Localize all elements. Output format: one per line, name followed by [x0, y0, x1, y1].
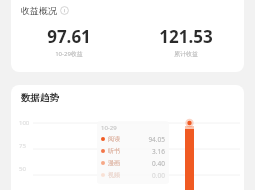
- button[interactable]: 收益概况: [21, 5, 69, 16]
- staticText: 数据趋势: [21, 92, 59, 104]
- staticText: 10-29收益: [55, 50, 83, 58]
- staticText: 94.05: [148, 135, 165, 144]
- staticText: 121.53: [159, 25, 213, 48]
- staticText: 累计收益: [174, 50, 198, 58]
- staticText: 100: [19, 119, 30, 127]
- staticText: 阅读: [108, 135, 120, 143]
- staticText: 50: [19, 165, 26, 173]
- button[interactable]: 10-29: [101, 124, 165, 181]
- staticText: 0.40: [152, 159, 165, 168]
- staticText: 10-29: [101, 124, 117, 132]
- button[interactable]: 收益概况: [11, 0, 244, 72]
- staticText: 听书: [108, 147, 120, 155]
- staticText: 收益概况: [21, 5, 57, 16]
- staticText: 漫画: [108, 159, 120, 167]
- other: 说明: [60, 6, 69, 15]
- staticText: 75: [19, 142, 26, 150]
- staticText: 3.16: [152, 147, 165, 156]
- staticText: 0.00: [152, 171, 165, 180]
- staticText: 97.61: [47, 25, 91, 48]
- staticText: 视频: [108, 171, 120, 179]
